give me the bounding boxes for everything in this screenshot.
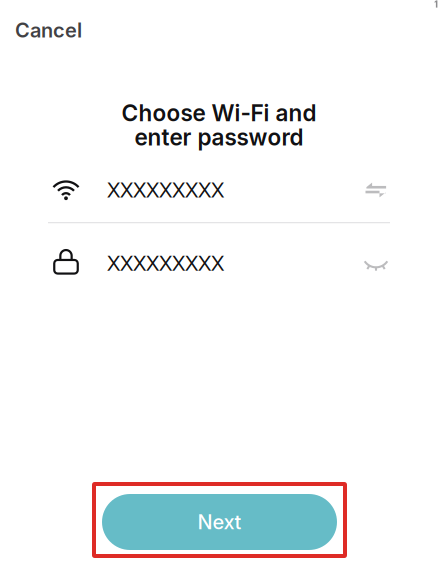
staticText: XXXXXXXXX [107,251,224,276]
button[interactable]: Next [102,494,337,550]
staticText: enter password [134,124,303,151]
staticText: XXXXXXXXX [107,177,224,202]
staticText: Choose Wi-Fi and [121,99,316,127]
button[interactable]: Show password [359,248,393,278]
button[interactable]: Change network [359,175,393,205]
staticText: Cancel [15,18,82,42]
staticText: Next [197,510,241,534]
button[interactable]: Cancel [0,0,98,52]
